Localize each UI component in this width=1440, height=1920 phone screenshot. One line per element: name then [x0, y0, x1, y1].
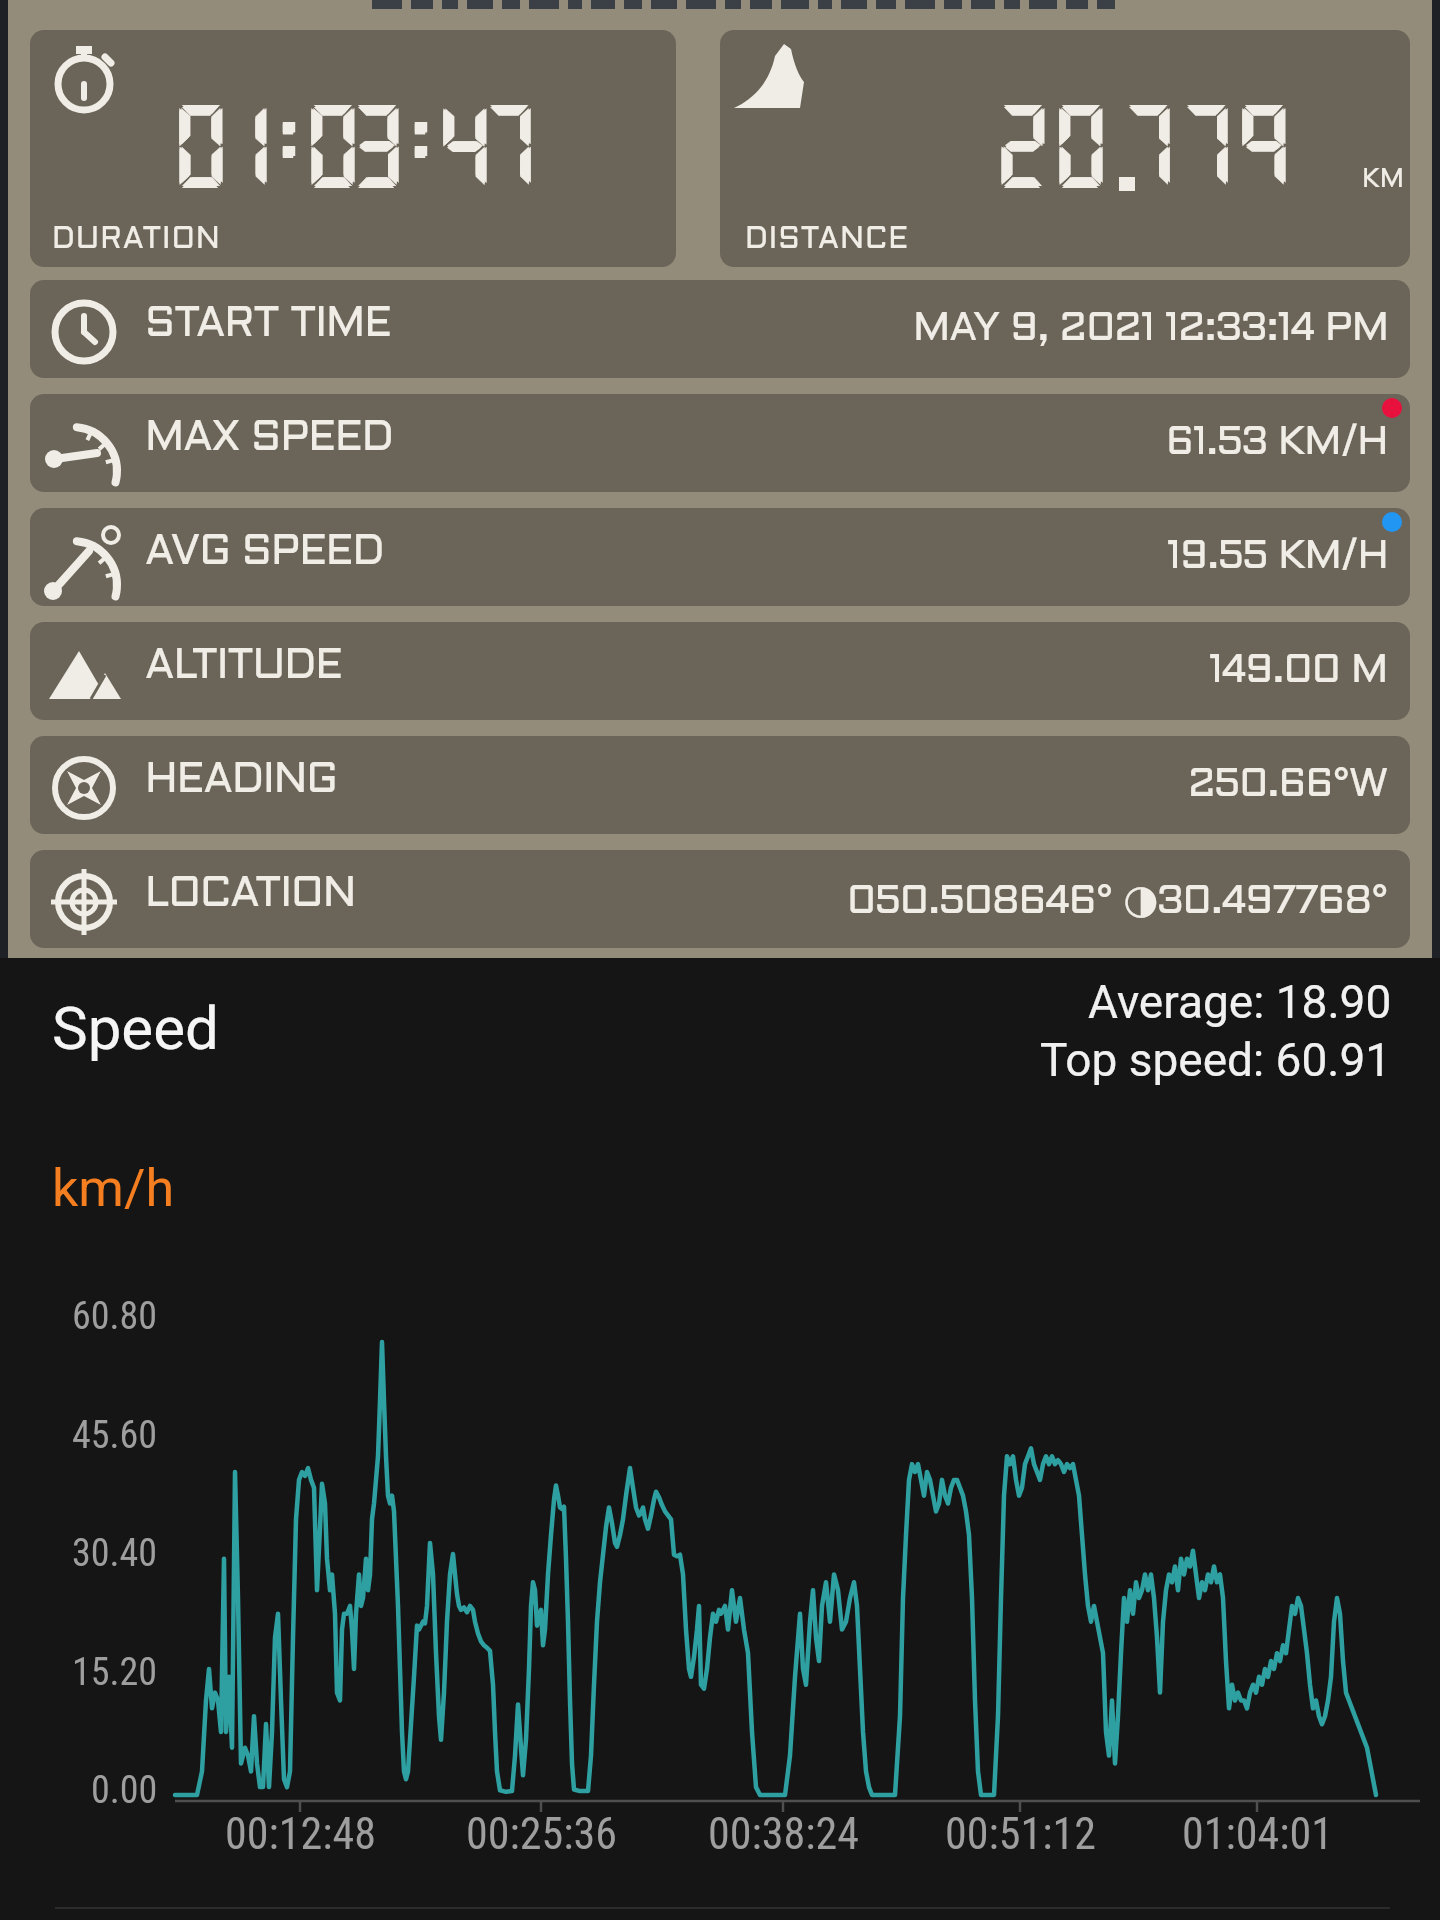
- staticText: 45.60: [72, 1413, 158, 1458]
- staticText: km/h: [52, 1158, 175, 1219]
- button[interactable]: START TIME: [30, 280, 1410, 378]
- staticText: 15.20: [72, 1650, 158, 1695]
- staticText: 20: [990, 93, 1106, 196]
- staticText: 20: [990, 91, 1106, 194]
- staticText: MAY 9, 2021 12:33:14 PM: [913, 311, 1388, 348]
- button[interactable]: 20: [720, 30, 1410, 267]
- staticText: 050.508646° ◑30.497768°: [847, 876, 1388, 923]
- staticText: AVG SPEED: [145, 534, 384, 573]
- button[interactable]: LOCATION: [30, 850, 1410, 948]
- staticText: 19.55 KM/H: [1167, 539, 1388, 576]
- button[interactable]: ALTITUDE: [30, 622, 1410, 720]
- staticText: Top speed: 60.91: [1040, 1033, 1392, 1087]
- staticText: 01:03:47: [170, 91, 522, 194]
- staticText: LOCATION: [145, 876, 356, 915]
- staticText: 00:25:36: [466, 1808, 617, 1860]
- staticText: 01:03:47: [168, 93, 520, 196]
- staticText: 01:04:01: [1182, 1808, 1333, 1860]
- staticText: 20: [992, 91, 1108, 194]
- staticText: 01:03:47: [168, 91, 520, 194]
- staticText: Speed: [52, 993, 219, 1063]
- staticText: 250.66°W: [1188, 767, 1388, 804]
- staticText: 00:51:12: [945, 1808, 1096, 1860]
- staticText: 00:12:48: [225, 1808, 376, 1860]
- button[interactable]: MAX SPEED: [30, 394, 1410, 492]
- button[interactable]: 01:03:47: [30, 30, 676, 267]
- staticText: KM: [1362, 168, 1404, 192]
- staticText: START TIME: [145, 306, 391, 345]
- staticText: 779: [1115, 93, 1289, 196]
- staticText: Average: 18.90: [1088, 975, 1392, 1029]
- staticText: ALTITUDE: [145, 648, 343, 687]
- staticText: 60.80: [72, 1294, 158, 1339]
- staticText: 779: [1115, 91, 1289, 194]
- staticText: 00:38:24: [708, 1808, 859, 1860]
- staticText: HEADING: [145, 762, 338, 801]
- staticText: 779: [1117, 91, 1291, 194]
- staticText: 149.00 M: [1209, 653, 1388, 690]
- button[interactable]: AVG SPEED: [30, 508, 1410, 606]
- staticText: DISTANCE: [745, 226, 910, 254]
- staticText: 0.00: [91, 1768, 158, 1813]
- staticText: 61.53 KM/H: [1166, 425, 1388, 462]
- staticText: 30.40: [72, 1531, 158, 1576]
- staticText: DURATION: [52, 226, 221, 254]
- button[interactable]: HEADING: [30, 736, 1410, 834]
- staticText: MAX SPEED: [145, 420, 393, 459]
